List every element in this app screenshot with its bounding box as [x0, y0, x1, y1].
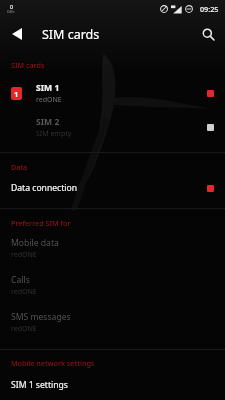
button[interactable]: Mobile data — [0, 232, 225, 269]
staticText: redONE — [36, 95, 62, 105]
button[interactable]: SMS messages — [0, 306, 225, 343]
staticText: redONE — [11, 324, 37, 334]
staticText: 0 — [10, 3, 13, 10]
staticText: Data — [11, 162, 28, 172]
staticText: SMS messages — [11, 311, 71, 323]
staticText: Preferred SIM for — [11, 218, 71, 228]
staticText: SIM 2 — [36, 116, 60, 128]
staticText: redONE — [11, 250, 37, 260]
button[interactable]: Search — [191, 17, 225, 51]
staticText: 09:25 — [200, 4, 219, 14]
staticText: 1 — [14, 89, 19, 99]
staticText: SIM empty — [36, 129, 72, 139]
button[interactable]: SIM 2 — [0, 110, 225, 144]
staticText: SIM 1 settings — [11, 379, 68, 391]
button[interactable]: Data connection — [0, 177, 225, 199]
staticText: SIM 1 — [36, 82, 60, 94]
staticText: Calls — [11, 274, 30, 286]
staticText: Mobile network settings — [11, 358, 95, 368]
staticText: Data connection — [11, 182, 207, 194]
button[interactable]: SIM 1 settings — [0, 374, 225, 396]
button[interactable]: 1 — [0, 76, 225, 110]
staticText: Mobile data — [11, 237, 59, 249]
staticText: SIM cards — [11, 60, 45, 70]
button[interactable]: Calls — [0, 269, 225, 306]
button[interactable]: Back — [0, 17, 34, 51]
staticText: SIM cards — [42, 26, 191, 43]
staticText: redONE — [11, 287, 37, 297]
staticText: KiB/s — [7, 10, 15, 14]
